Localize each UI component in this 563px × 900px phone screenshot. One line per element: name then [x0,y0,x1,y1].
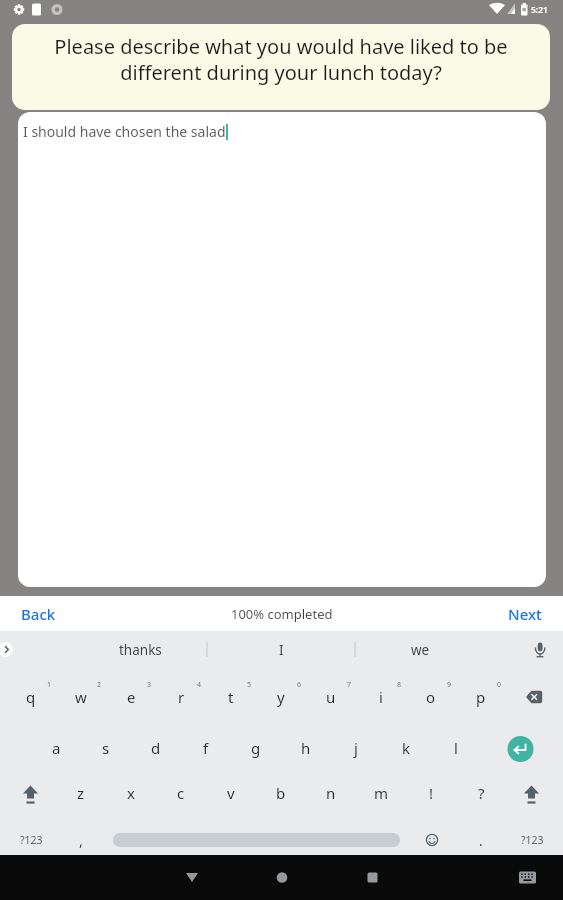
button[interactable] [504,732,538,766]
button[interactable]: , [58,819,104,861]
staticText: t [228,687,234,707]
staticText: s [102,738,110,758]
staticText: i [379,687,383,707]
button[interactable]: ?123 [509,819,555,861]
button[interactable] [262,860,302,896]
button[interactable]: w [58,676,104,718]
staticText: x [127,783,135,803]
staticText: , [79,831,83,850]
staticText: 5 [247,680,252,690]
staticText: Please describe what you would have like… [54,33,508,85]
staticText: 2 [97,680,102,690]
staticText: o [426,687,436,707]
staticText: 7 [347,680,352,690]
staticText: w [75,687,87,707]
staticText: ?123 [20,833,43,847]
staticText: ! [429,783,434,803]
button[interactable]: v [208,772,254,814]
staticText: 5:21 [531,4,548,16]
button[interactable]: q [8,676,54,718]
button[interactable]: r [158,676,204,718]
staticText: h [301,738,311,758]
staticText: g [251,738,261,758]
button[interactable]: e [108,676,154,718]
button[interactable] [0,642,13,657]
button[interactable]: d [133,727,179,769]
staticText: p [476,687,486,707]
button[interactable]: m [358,772,404,814]
staticText: 4 [197,680,202,690]
button[interactable]: h [283,727,329,769]
button[interactable] [513,772,551,814]
staticText: a [52,738,61,758]
button[interactable]: p [458,676,504,718]
staticText: m [374,783,389,803]
button[interactable]: o [408,676,454,718]
staticText: k [402,738,411,758]
button[interactable]: thanks [80,631,200,668]
staticText: . [479,831,483,850]
button[interactable]: u [308,676,354,718]
staticText: e [127,687,136,707]
staticText: f [203,738,209,758]
staticText: r [178,687,185,707]
staticText: q [26,687,36,707]
button[interactable]: ?123 [8,819,54,861]
staticText: 8 [397,680,402,690]
button[interactable]: i [358,676,404,718]
staticText: 6 [297,680,302,690]
staticText: v [227,783,235,803]
button[interactable]: ! [408,772,454,814]
staticText: u [326,687,336,707]
staticText: 3 [147,680,152,690]
button[interactable] [516,676,554,718]
staticText: 100% completed [231,605,333,623]
button[interactable]: we [360,631,480,668]
staticText: I [279,641,284,659]
button[interactable] [172,860,212,896]
button[interactable]: y [258,676,304,718]
staticText: 1 [47,680,52,690]
staticText: c [177,783,185,803]
staticText: 9 [447,680,452,690]
button[interactable]: x [108,772,154,814]
button[interactable] [113,833,400,847]
staticText: I should have chosen the salad [23,122,226,141]
button[interactable]: l [433,727,479,769]
button[interactable]: . [458,819,504,861]
button[interactable]: Next [495,596,555,631]
staticText: 0 [497,680,502,690]
staticText: j [354,738,358,758]
button[interactable]: k [383,727,429,769]
button[interactable]: s [83,727,129,769]
button[interactable]: c [158,772,204,814]
button[interactable] [12,772,50,814]
staticText: z [77,783,85,803]
button[interactable]: I should have chosen the salad [18,112,546,587]
button[interactable]: j [333,727,379,769]
button[interactable]: I [221,631,341,668]
button[interactable]: g [233,727,279,769]
staticText: thanks [119,641,162,659]
button[interactable]: t [208,676,254,718]
button[interactable]: z [58,772,104,814]
staticText: n [326,783,336,803]
button[interactable]: b [258,772,304,814]
button[interactable] [352,860,392,896]
button[interactable]: Back [8,596,68,631]
button[interactable]: n [308,772,354,814]
staticText: ?123 [521,833,544,847]
button[interactable]: f [183,727,229,769]
staticText: we [411,641,430,659]
staticText: y [277,687,285,707]
staticText: Next [508,604,542,624]
button[interactable] [509,860,549,896]
staticText: d [151,738,161,758]
button[interactable]: ? [458,772,504,814]
staticText: Back [21,604,56,624]
button[interactable]: a [33,727,79,769]
staticText: ? [478,783,485,803]
staticText: b [276,783,286,803]
staticText: l [454,738,458,758]
